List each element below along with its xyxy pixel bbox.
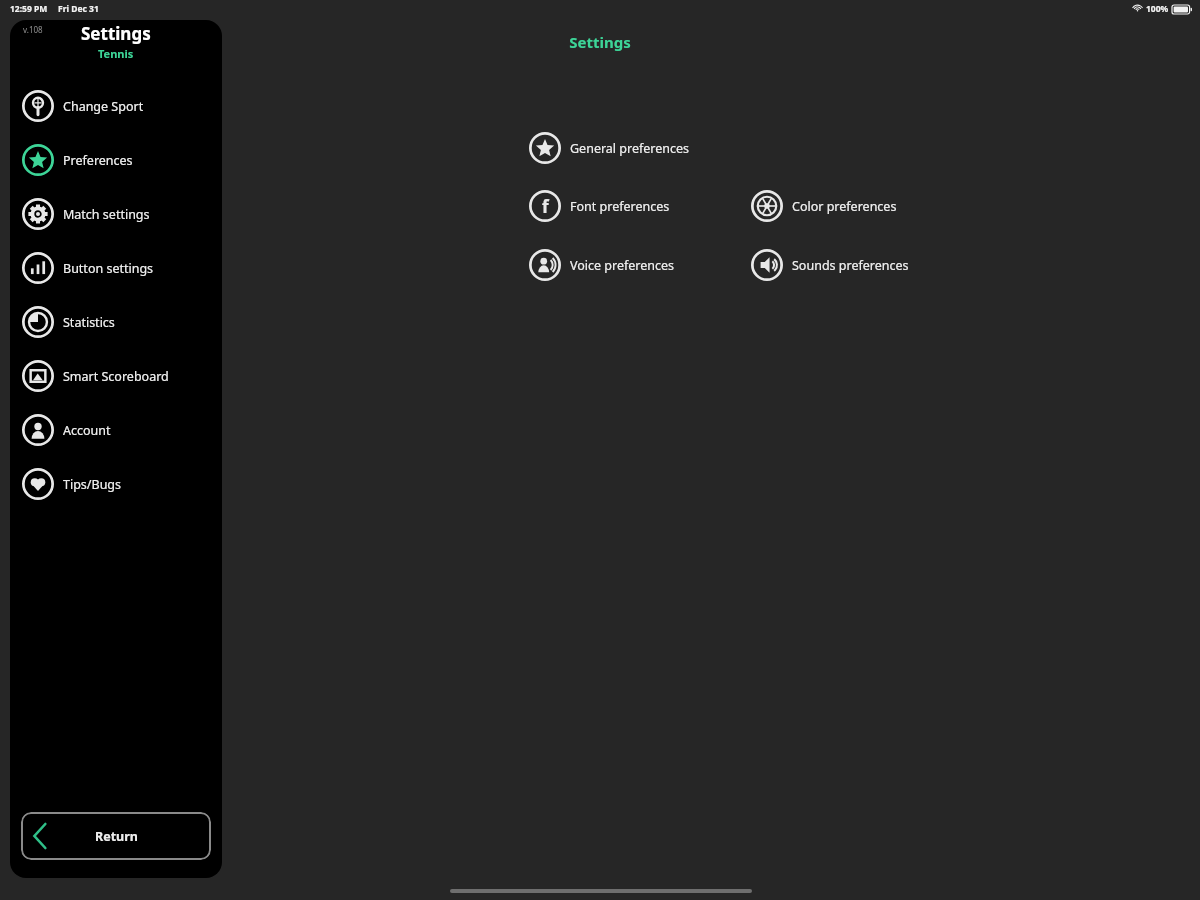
button[interactable]: Account [10,403,222,457]
button[interactable]: Tips/Bugs [10,457,222,511]
button[interactable]: Preferences [10,133,222,187]
button[interactable]: Change Sport [10,79,222,133]
staticText: 12:59 PM [10,3,48,15]
staticText: Return [95,828,138,845]
button[interactable]: Smart Scoreboard [10,349,222,403]
button[interactable]: Button settings [10,241,222,295]
staticText: Smart Scoreboard [63,368,169,385]
button[interactable]: f [527,181,672,231]
staticText: 100% [1146,3,1169,15]
button[interactable]: Voice preferences [527,240,677,290]
staticText: Tennis [98,46,134,61]
staticText: Statistics [63,314,115,331]
button[interactable]: Color preferences [749,181,899,231]
staticText: Font preferences [570,198,670,215]
staticText: Fri Dec 31 [58,3,99,15]
button[interactable]: Statistics [10,295,222,349]
button[interactable]: Return [21,812,211,860]
staticText: v.108 [23,24,43,35]
staticText: Change Sport [63,98,144,115]
staticText: Preferences [63,152,133,169]
staticText: Match settings [63,206,150,223]
staticText: Account [63,422,111,439]
staticText: Color preferences [792,198,897,215]
staticText: Tips/Bugs [63,476,122,493]
button[interactable]: Match settings [10,187,222,241]
staticText: Settings [81,22,151,45]
staticText: General preferences [570,140,690,157]
button[interactable]: Sounds preferences [749,240,911,290]
staticText: Sounds preferences [792,257,909,274]
staticText: Settings [0,32,1200,52]
staticText: Button settings [63,260,154,277]
button[interactable]: General preferences [527,123,692,173]
staticText: f [542,195,549,218]
staticText: Voice preferences [570,257,675,274]
